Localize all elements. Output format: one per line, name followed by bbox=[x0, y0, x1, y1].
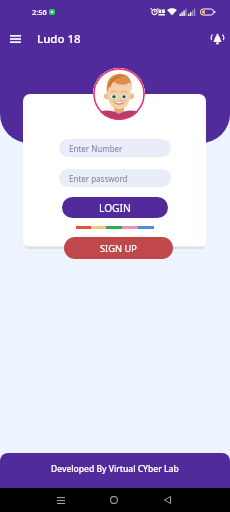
button[interactable]: Recents bbox=[49, 488, 73, 512]
staticText: 2:56 bbox=[32, 7, 47, 17]
staticText: Ludo 18 bbox=[37, 31, 81, 47]
button[interactable]: Home bbox=[102, 488, 126, 512]
staticText: Enter password bbox=[69, 173, 128, 184]
button[interactable]: SIGN UP bbox=[64, 237, 173, 259]
button[interactable]: Enter Number bbox=[59, 139, 171, 157]
button[interactable]: LOGIN bbox=[62, 197, 168, 218]
button[interactable]: Developed By Virtual CYber Lab bbox=[0, 453, 230, 488]
staticText: SIGN UP bbox=[100, 242, 137, 255]
button[interactable]: Menu bbox=[4, 28, 26, 50]
button[interactable]: Enter password bbox=[59, 169, 171, 187]
staticText: Enter Number bbox=[69, 143, 123, 154]
staticText: Developed By Virtual CYber Lab bbox=[51, 463, 179, 475]
button[interactable]: Notifications bbox=[206, 28, 228, 50]
staticText: LOGIN bbox=[99, 201, 131, 215]
button[interactable]: Back bbox=[155, 488, 179, 512]
